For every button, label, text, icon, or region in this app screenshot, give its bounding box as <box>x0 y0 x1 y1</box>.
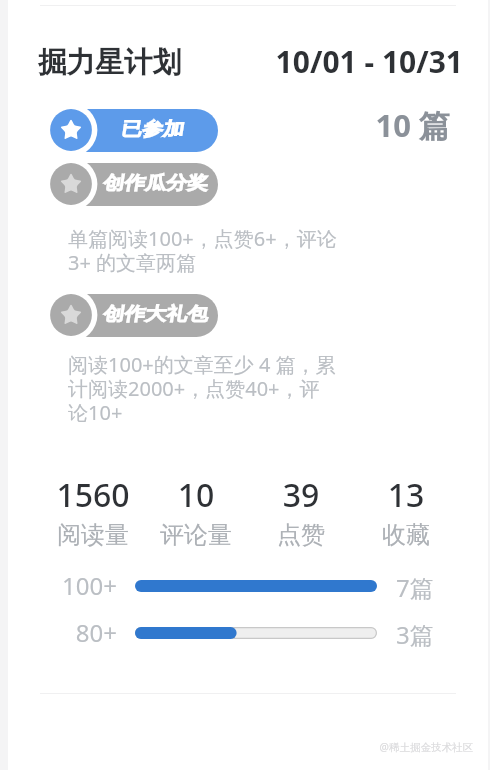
staticText: @稀土掘金技术社区 <box>283 740 473 754</box>
button[interactable]: 13 <box>351 473 461 547</box>
staticText: 7篇 <box>396 571 434 604</box>
staticText: 1560 <box>38 473 148 517</box>
staticText: 创作大礼包 <box>103 301 208 327</box>
staticText: 39 <box>246 473 356 517</box>
button[interactable]: 39 <box>246 473 356 547</box>
staticText: 阅读量 <box>38 520 148 550</box>
button[interactable]: 创作瓜分奖 <box>42 156 218 213</box>
staticText: 3篇 <box>396 618 434 651</box>
staticText: 13 <box>351 473 461 517</box>
button[interactable]: 10 <box>141 473 251 547</box>
button[interactable]: 1560 <box>38 473 148 547</box>
staticText: 掘力星计划 <box>38 44 181 80</box>
staticText: 10/01 - 10/31 <box>158 41 463 82</box>
staticText: 80+ <box>32 616 117 649</box>
button[interactable]: 创作大礼包 <box>42 287 218 344</box>
staticText: 点赞 <box>246 520 356 550</box>
staticText: 收藏 <box>351 520 461 550</box>
staticText: 10 篇 <box>258 104 450 146</box>
staticText: 已参加 <box>121 116 184 142</box>
staticText: 10 <box>141 473 251 517</box>
staticText: 评论量 <box>141 520 251 550</box>
staticText: 创作瓜分奖 <box>103 170 208 196</box>
staticText: 100+ <box>32 569 117 602</box>
staticText: 阅读100+的文章至少 4 篇，累 计阅读2000+，点赞40+，评 论10+ <box>68 351 336 426</box>
button[interactable]: 已参加 <box>42 102 218 159</box>
staticText: 单篇阅读100+，点赞6+，评论 3+ 的文章两篇 <box>68 225 337 276</box>
